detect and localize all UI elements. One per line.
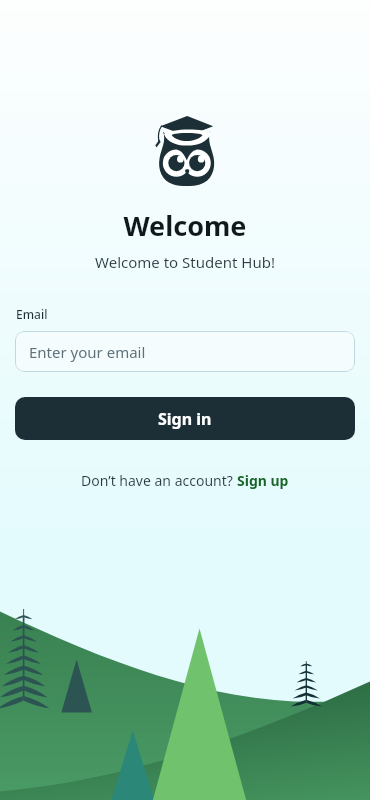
- staticText: Welcome to Student Hub!: [0, 252, 370, 272]
- button[interactable]: Enter your email: [15, 331, 355, 372]
- staticText: Don’t have an account?: [81, 471, 237, 490]
- button[interactable]: Sign up: [237, 471, 289, 490]
- button[interactable]: Sign in: [15, 397, 355, 440]
- staticText: Enter your email: [29, 342, 146, 362]
- staticText: Email: [16, 306, 48, 322]
- staticText: Sign in: [158, 408, 212, 430]
- staticText: Sign up: [237, 471, 289, 490]
- staticText: Welcome: [0, 207, 370, 244]
